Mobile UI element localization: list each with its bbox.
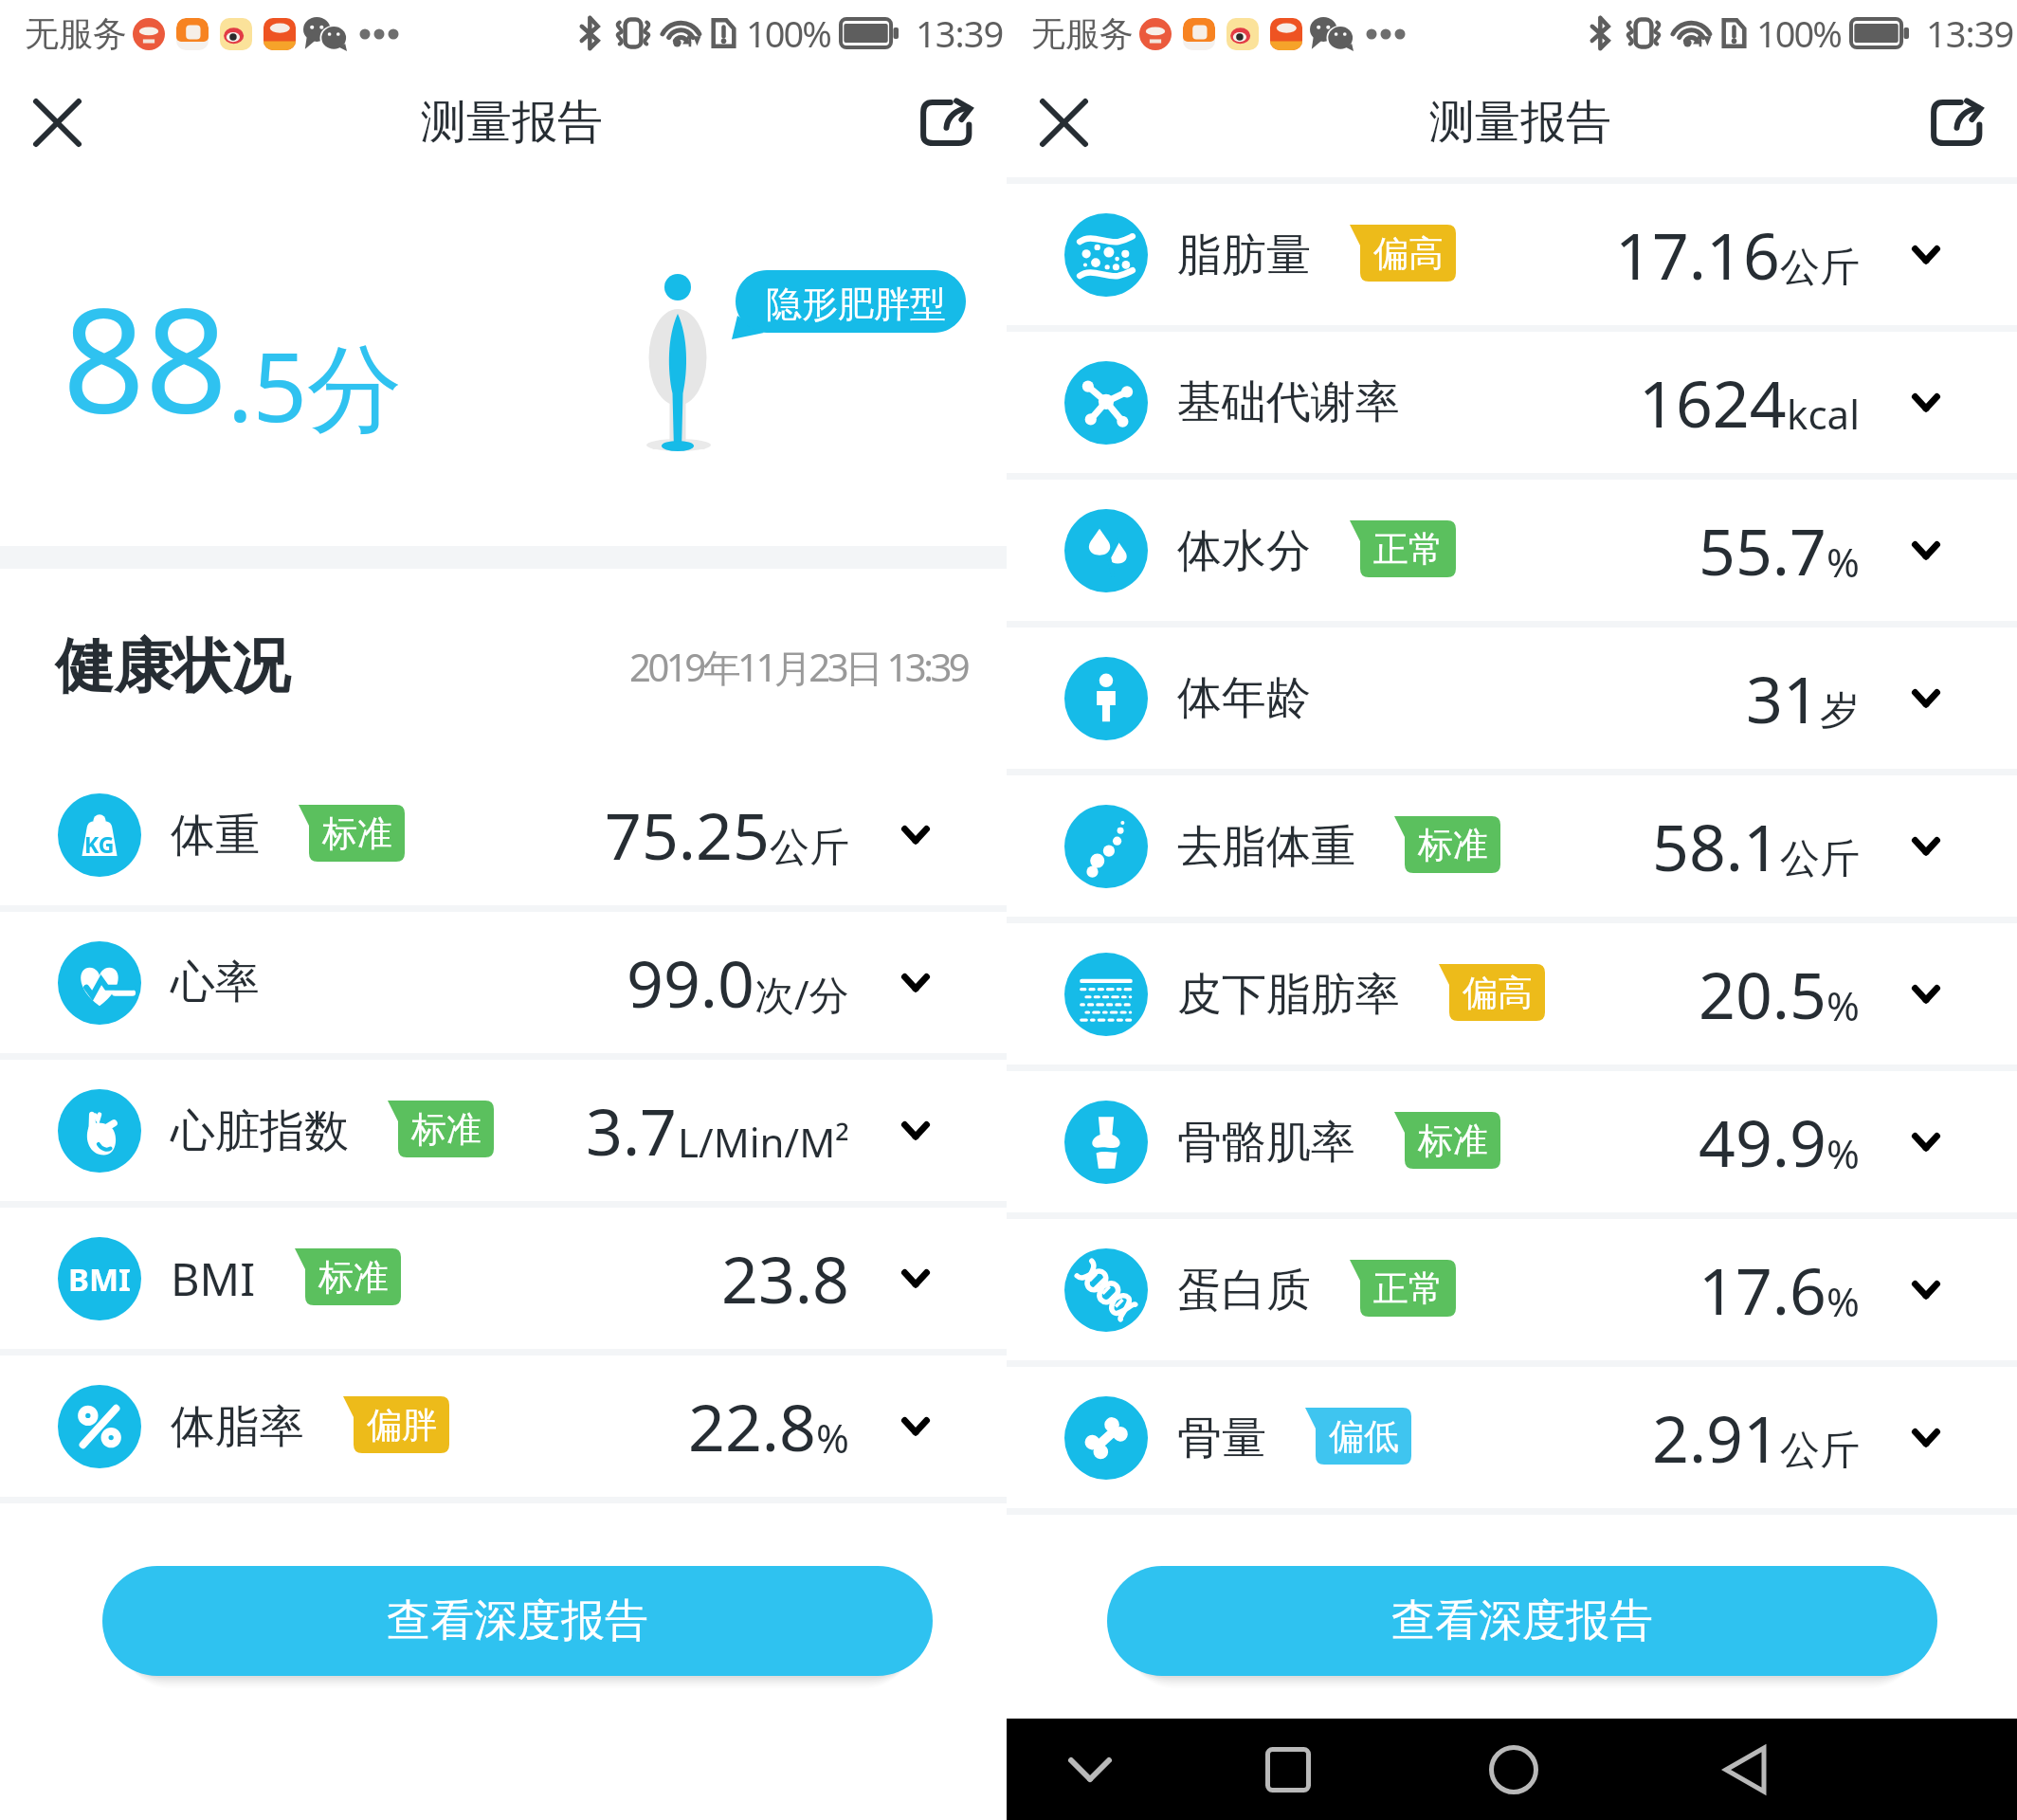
staticText: 22.8 — [688, 1382, 816, 1470]
staticText: 公斤 — [1780, 243, 1860, 293]
staticText: 皮下脂肪率 — [1177, 967, 1400, 1023]
button[interactable]: 基础代谢率 — [1007, 332, 2017, 480]
staticText: % — [1826, 1126, 1860, 1180]
staticText: 查看深度报告 — [1391, 1593, 1653, 1648]
staticText: 体重 — [171, 808, 260, 864]
staticText: 骨骼肌率 — [1177, 1115, 1355, 1171]
staticText: 体水分 — [1177, 523, 1311, 579]
button[interactable]: 查看深度报告 — [102, 1566, 933, 1676]
staticText: % — [1826, 535, 1860, 589]
staticText: 13:39 — [1926, 9, 2014, 58]
staticText: 体年龄 — [1177, 670, 1311, 726]
staticText: 标准 — [322, 811, 392, 856]
staticText: 88 — [63, 259, 227, 455]
button[interactable]: Home — [1457, 1719, 1571, 1820]
staticText: 测量报告 — [421, 94, 603, 151]
staticText: 偏低 — [1329, 1414, 1399, 1459]
button[interactable]: 体脂率 — [0, 1356, 1007, 1503]
button[interactable]: 骨骼肌率 — [1007, 1071, 2017, 1219]
staticText: 17.16 — [1615, 210, 1780, 299]
staticText: 健康状况 — [55, 629, 290, 703]
staticText: % — [1826, 1274, 1860, 1328]
staticText: BMI — [68, 1258, 131, 1301]
button[interactable]: Share — [908, 84, 984, 160]
staticText: 正常 — [1373, 1266, 1444, 1311]
staticText: 骨量 — [1177, 1410, 1266, 1466]
staticText: KG — [84, 829, 115, 859]
staticText: 偏高 — [1463, 971, 1533, 1015]
staticText: 标准 — [318, 1255, 389, 1300]
staticText: 隐形肥胖型 — [766, 282, 946, 327]
staticText: 偏高 — [1373, 231, 1444, 276]
staticText: 1624 — [1639, 358, 1787, 446]
button[interactable]: KG — [0, 764, 1007, 912]
button[interactable]: 查看深度报告 — [1107, 1566, 1937, 1676]
staticText: 31 — [1746, 654, 1820, 742]
staticText: 次/分 — [754, 967, 849, 1021]
staticText: 偏胖 — [367, 1403, 437, 1447]
staticText: 17.6 — [1699, 1246, 1826, 1334]
staticText: 75.25 — [605, 791, 770, 879]
staticText: 心率 — [171, 955, 260, 1010]
staticText: 标准 — [1418, 823, 1488, 867]
staticText: 去脂体重 — [1177, 819, 1355, 875]
staticText: 蛋白质 — [1177, 1263, 1311, 1319]
button[interactable]: 体水分 — [1007, 480, 2017, 628]
button[interactable]: Recent apps — [1231, 1719, 1345, 1820]
staticText: 100% — [746, 9, 830, 58]
staticText: 岁 — [1820, 686, 1860, 737]
staticText: 99.0 — [627, 938, 754, 1027]
button[interactable]: Close — [1026, 84, 1101, 160]
staticText: BMI — [171, 1248, 256, 1309]
button[interactable]: 骨量 — [1007, 1367, 2017, 1515]
staticText: 查看深度报告 — [387, 1593, 648, 1648]
staticText: 2019年11月23日 13:39 — [629, 641, 968, 693]
staticText: 基础代谢率 — [1177, 374, 1400, 430]
staticText: 100% — [1756, 9, 1841, 58]
button[interactable]: BMI — [0, 1208, 1007, 1356]
staticText: .5分 — [227, 320, 402, 450]
button[interactable]: 心率 — [0, 912, 1007, 1060]
staticText: % — [816, 1410, 849, 1465]
staticText: 标准 — [411, 1107, 482, 1152]
staticText: 49.9 — [1699, 1098, 1826, 1186]
staticText: 正常 — [1373, 527, 1444, 572]
button[interactable]: Hide keyboard — [1033, 1719, 1147, 1820]
staticText: 无服务 — [25, 12, 127, 55]
staticText: 无服务 — [1031, 12, 1134, 55]
staticText: L/Min/M² — [678, 1115, 849, 1169]
staticText: 55.7 — [1699, 506, 1826, 594]
staticText: 23.8 — [721, 1234, 849, 1322]
button[interactable]: Share — [1918, 84, 1994, 160]
staticText: % — [1826, 978, 1860, 1032]
button[interactable]: 体年龄 — [1007, 628, 2017, 775]
staticText: 13:39 — [916, 9, 1004, 58]
staticText: 2.91 — [1652, 1393, 1780, 1482]
staticText: 20.5 — [1699, 950, 1826, 1038]
button[interactable]: 皮下脂肪率 — [1007, 923, 2017, 1071]
button[interactable]: Close — [19, 84, 95, 160]
button[interactable]: Back — [1688, 1719, 1802, 1820]
staticText: kcal — [1787, 387, 1860, 441]
staticText: 体脂率 — [171, 1399, 304, 1455]
staticText: 心脏指数 — [171, 1103, 349, 1159]
button[interactable]: 蛋白质 — [1007, 1219, 2017, 1367]
staticText: 3.7 — [586, 1086, 678, 1174]
staticText: 公斤 — [1780, 1426, 1860, 1476]
staticText: 标准 — [1418, 1119, 1488, 1163]
staticText: 公斤 — [1780, 834, 1860, 884]
button[interactable]: 去脂体重 — [1007, 775, 2017, 923]
staticText: 58.1 — [1652, 802, 1780, 890]
staticText: 脂肪量 — [1177, 227, 1311, 283]
staticText: 测量报告 — [1429, 94, 1611, 151]
button[interactable]: 脂肪量 — [1007, 184, 2017, 332]
staticText: 公斤 — [770, 823, 849, 873]
button[interactable]: 心脏指数 — [0, 1060, 1007, 1208]
